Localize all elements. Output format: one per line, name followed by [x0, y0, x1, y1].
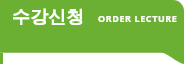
staticText: 수강신청 — [12, 6, 84, 29]
staticText: ORDER LECTURE — [98, 12, 178, 24]
button[interactable]: Order Lecture tab — [0, 0, 184, 64]
